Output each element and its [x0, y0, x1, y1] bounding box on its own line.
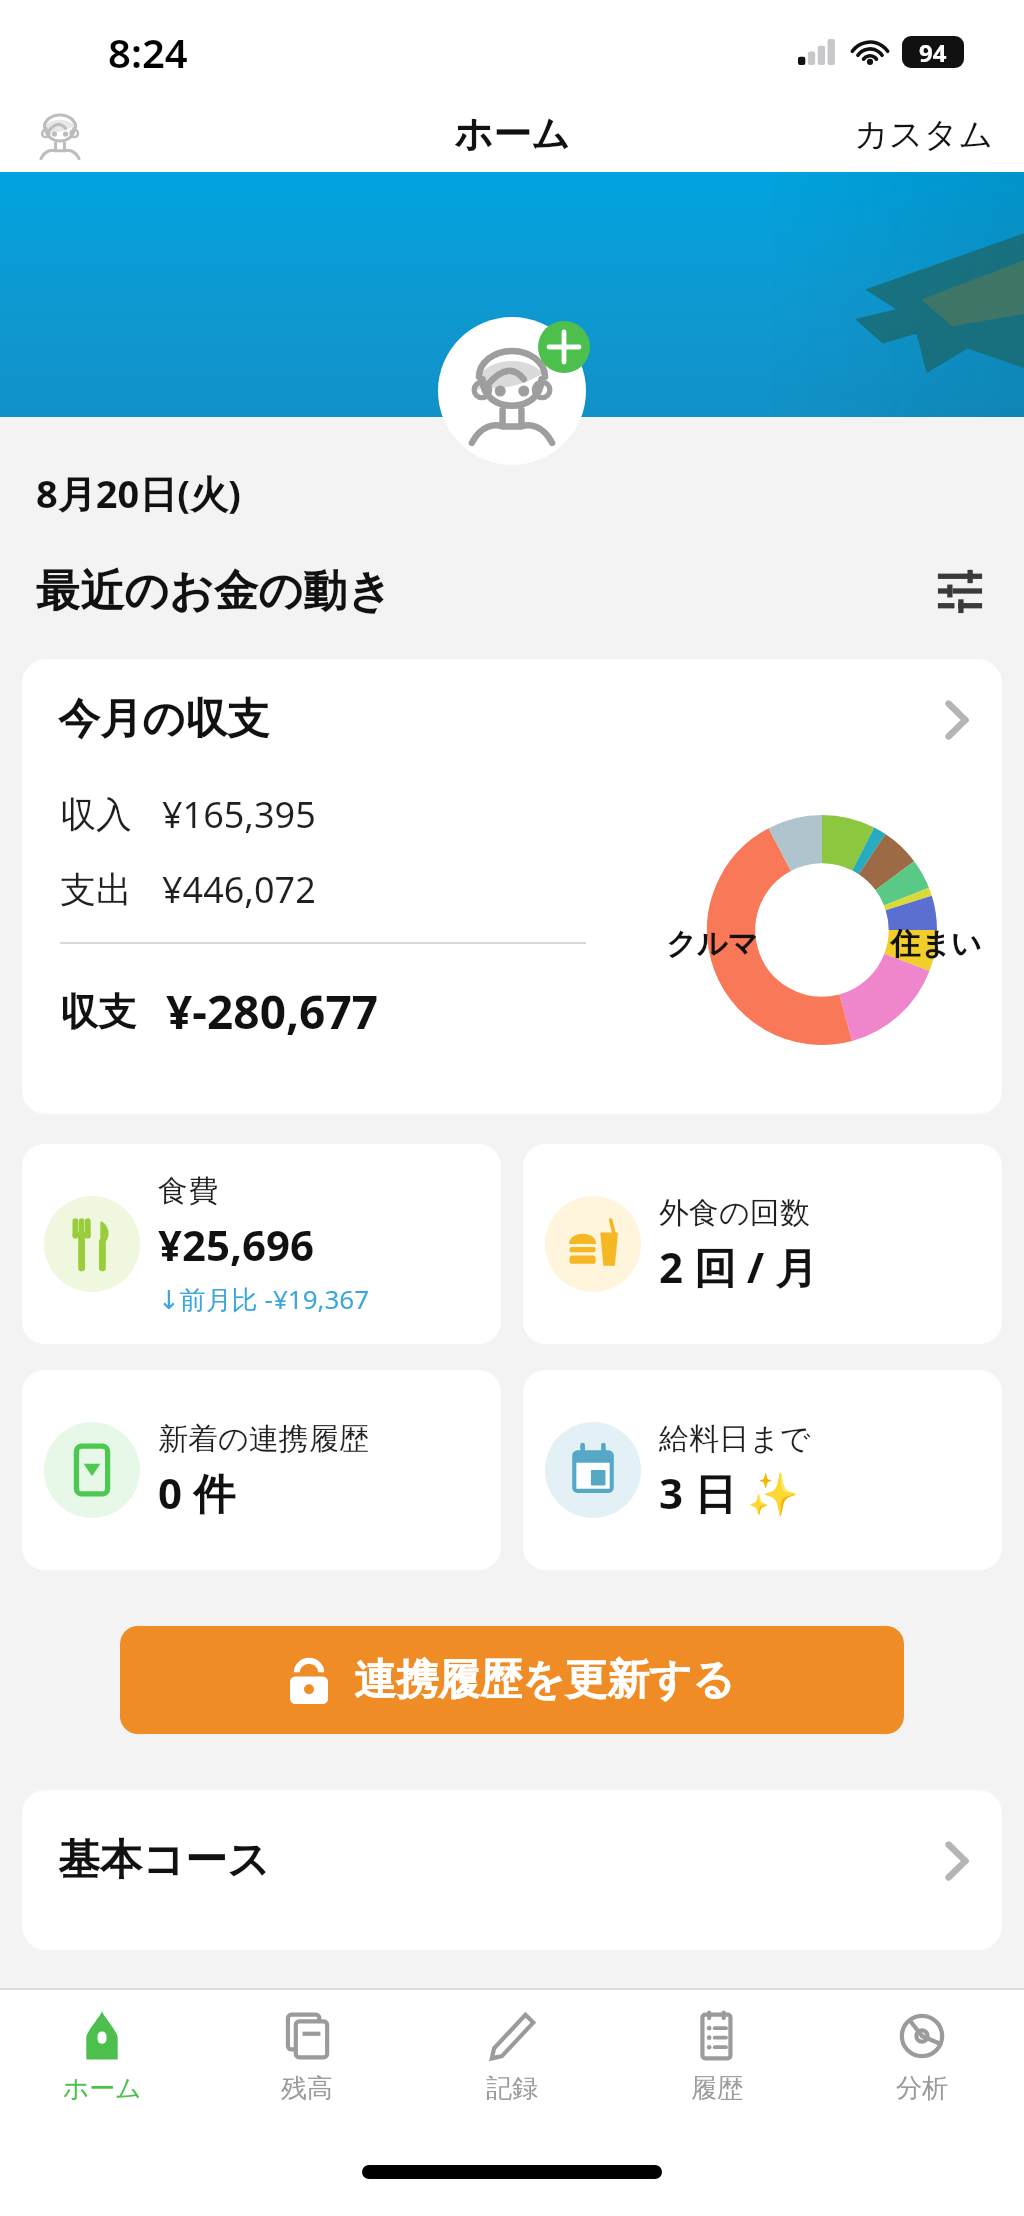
staticText: 外食の回数: [659, 1194, 810, 1232]
staticText: 記録: [486, 2072, 538, 2105]
staticText: ホーム: [62, 2072, 142, 2105]
button[interactable]: Edit avatar: [438, 317, 586, 465]
button[interactable]: 外食の回数: [523, 1144, 1002, 1344]
staticText: 分析: [896, 2072, 948, 2105]
staticText: 8:24: [108, 25, 188, 79]
button[interactable]: 基本コース: [22, 1790, 1002, 1950]
button[interactable]: ホーム: [0, 1990, 204, 2140]
button[interactable]: Filter settings: [930, 561, 990, 621]
staticText: ¥25,696: [158, 1216, 315, 1273]
staticText: カスタム: [854, 113, 994, 156]
staticText: ホーム: [454, 110, 570, 158]
staticText: ¥-280,677: [166, 980, 379, 1043]
button[interactable]: 残高: [204, 1990, 409, 2140]
staticText: 収入: [60, 792, 132, 837]
staticText: ¥446,072: [162, 865, 316, 914]
button[interactable]: 分析: [819, 1990, 1024, 2140]
button[interactable]: 食費: [22, 1144, 501, 1344]
staticText: ↓前月比 -¥19,367: [158, 1281, 370, 1317]
staticText: ¥165,395: [162, 790, 316, 839]
staticText: 食費: [158, 1172, 218, 1210]
button[interactable]: 履歴: [614, 1990, 819, 2140]
button[interactable]: カスタム: [854, 113, 1024, 156]
staticText: 収支: [60, 988, 136, 1036]
button[interactable]: 給料日まで: [523, 1370, 1002, 1570]
staticText: 連携履歴を更新する: [354, 1654, 735, 1707]
staticText: 8月20日(火): [36, 467, 241, 519]
button[interactable]: Profile: [28, 102, 92, 166]
staticText: クルマ: [666, 925, 759, 963]
staticText: 基本コース: [58, 1834, 270, 1887]
staticText: 最近のお金の動き: [36, 564, 393, 619]
staticText: 0 件: [158, 1464, 235, 1521]
button[interactable]: 新着の連携履歴: [22, 1370, 501, 1570]
button[interactable]: 今月の収支: [22, 659, 1002, 1114]
staticText: 94: [919, 36, 947, 68]
button[interactable]: 連携履歴を更新する: [120, 1626, 904, 1734]
staticText: 残高: [281, 2072, 333, 2105]
button[interactable]: 記録: [409, 1990, 614, 2140]
staticText: 今月の収支: [58, 693, 269, 746]
staticText: 履歴: [691, 2072, 743, 2105]
staticText: 支出: [60, 867, 132, 912]
staticText: 3 日 ✨: [659, 1464, 800, 1521]
staticText: 2 回 / 月: [659, 1238, 818, 1295]
staticText: 住まい: [890, 925, 982, 963]
staticText: 新着の連携履歴: [158, 1420, 369, 1458]
staticText: 給料日まで: [659, 1420, 811, 1458]
